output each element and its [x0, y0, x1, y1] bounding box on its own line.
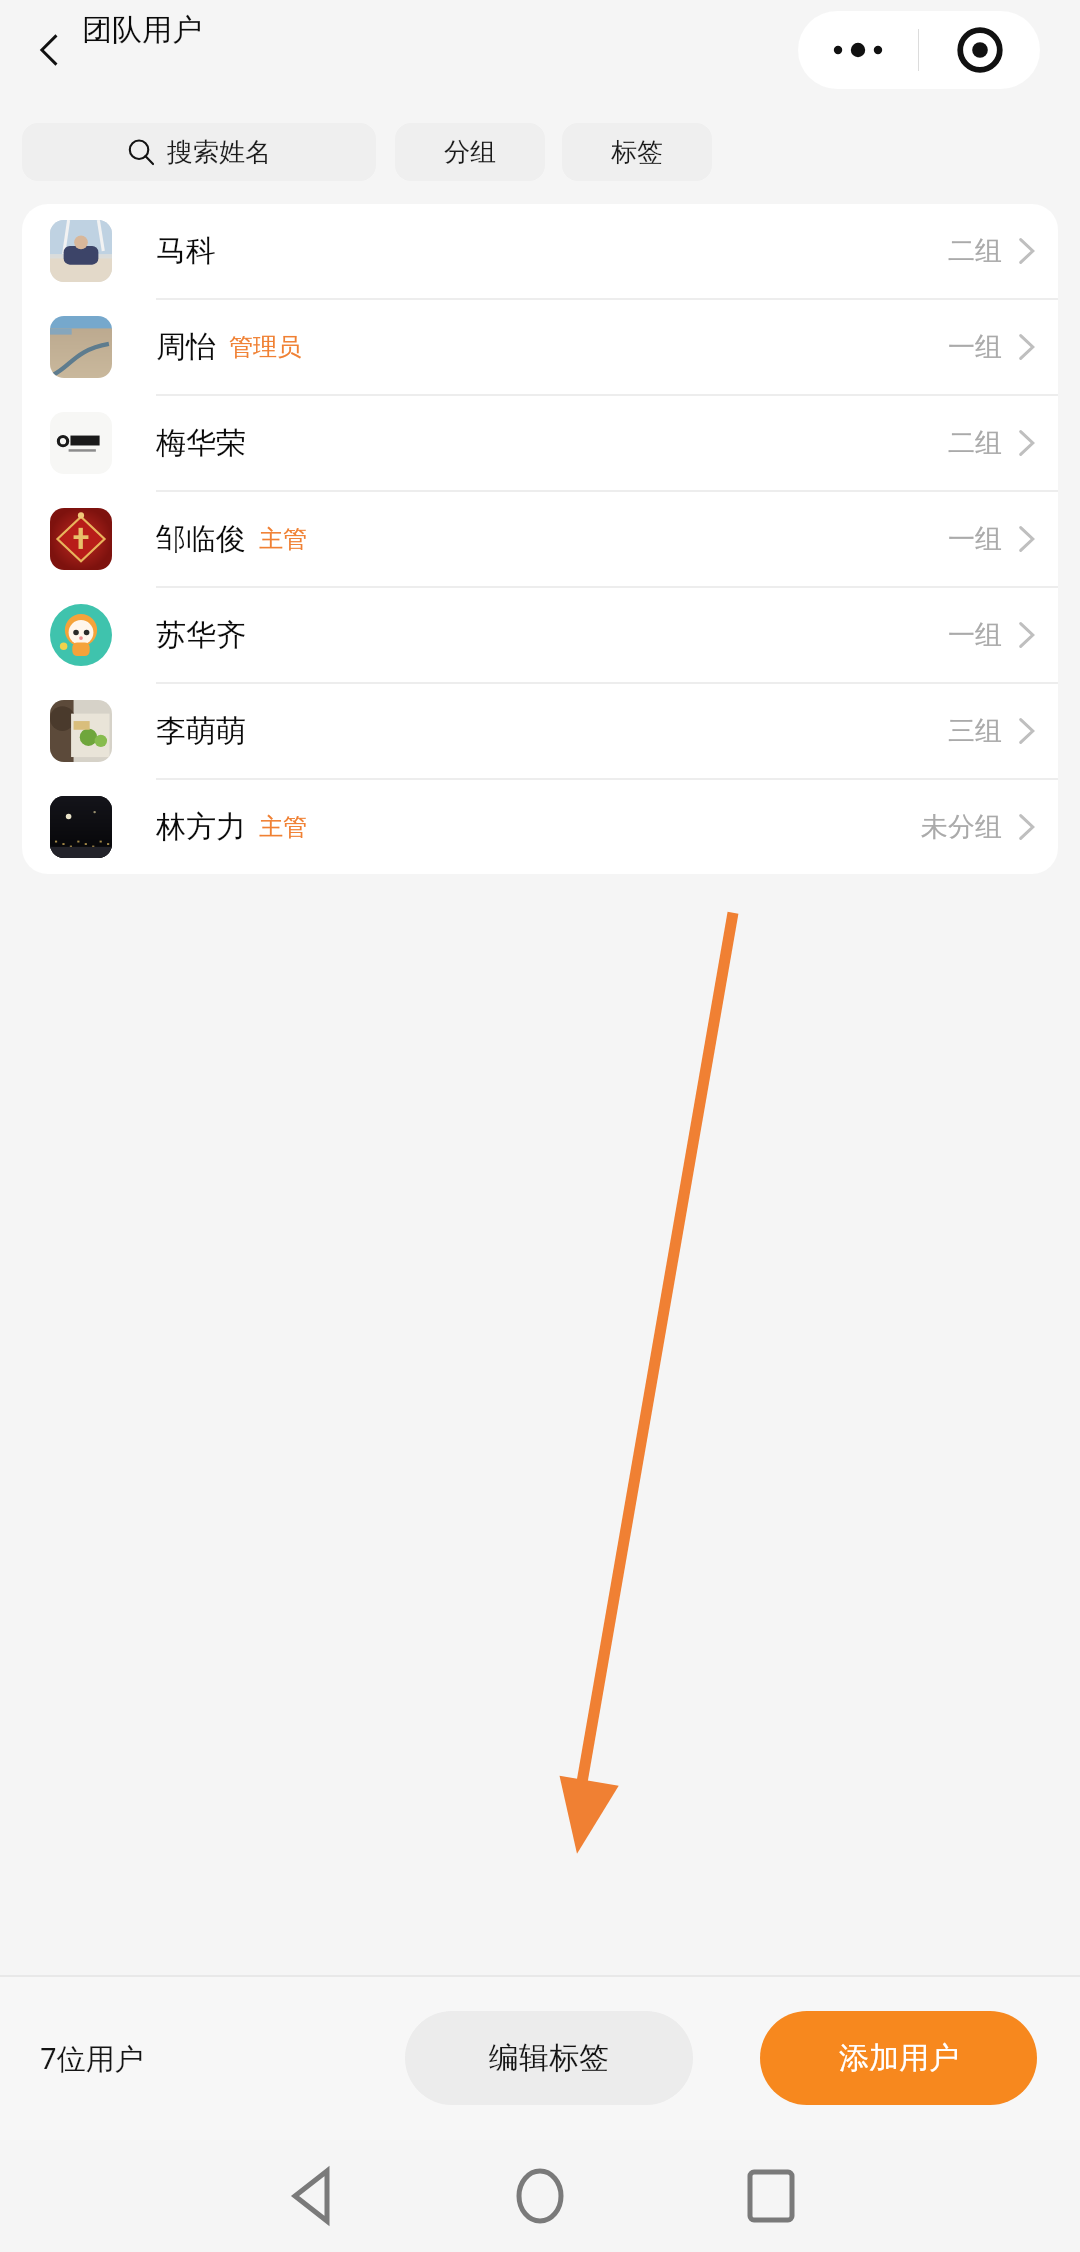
button[interactable]: 李萌萌: [22, 684, 1058, 778]
button[interactable]: 编辑标签: [405, 2011, 693, 2105]
staticText: 周怡: [156, 328, 216, 366]
staticText: 添加用户: [839, 2039, 959, 2077]
button[interactable]: 添加用户: [760, 2011, 1037, 2105]
staticText: 主管: [259, 524, 307, 554]
staticText: 三组: [948, 714, 1002, 748]
button[interactable]: 邹临俊: [22, 492, 1058, 586]
button[interactable]: Recent apps: [716, 2140, 826, 2252]
staticText: 一组: [948, 522, 1002, 556]
staticText: 搜索姓名: [167, 136, 271, 169]
button[interactable]: 梅华荣: [22, 396, 1058, 490]
button[interactable]: 标签: [562, 123, 712, 181]
button[interactable]: Back: [256, 2140, 366, 2252]
staticText: 梅华荣: [156, 424, 246, 462]
button[interactable]: Back: [14, 14, 86, 86]
staticText: 7位用户: [40, 2038, 144, 2078]
staticText: 主管: [259, 812, 307, 842]
staticText: 编辑标签: [489, 2039, 609, 2077]
staticText: 邹临俊: [156, 520, 246, 558]
button[interactable]: Home: [485, 2140, 595, 2252]
button[interactable]: 马科: [22, 204, 1058, 298]
staticText: 马科: [156, 232, 216, 270]
staticText: 林方力: [156, 808, 246, 846]
staticText: 苏华齐: [156, 616, 246, 654]
staticText: 标签: [611, 136, 663, 169]
button[interactable]: 搜索姓名: [22, 123, 376, 181]
button[interactable]: 苏华齐: [22, 588, 1058, 682]
button[interactable]: 周怡: [22, 300, 1058, 394]
staticText: 未分组: [921, 810, 1002, 844]
button[interactable]: Target: [919, 11, 1040, 89]
button[interactable]: 分组: [395, 123, 545, 181]
staticText: 一组: [948, 330, 1002, 364]
button[interactable]: More options: [798, 11, 918, 89]
staticText: 二组: [948, 234, 1002, 268]
staticText: 李萌萌: [156, 712, 246, 750]
staticText: 一组: [948, 618, 1002, 652]
button[interactable]: 林方力: [22, 780, 1058, 874]
staticText: 分组: [444, 136, 496, 169]
staticText: 管理员: [229, 332, 301, 362]
staticText: 二组: [948, 426, 1002, 460]
staticText: 团队用户: [82, 11, 202, 49]
